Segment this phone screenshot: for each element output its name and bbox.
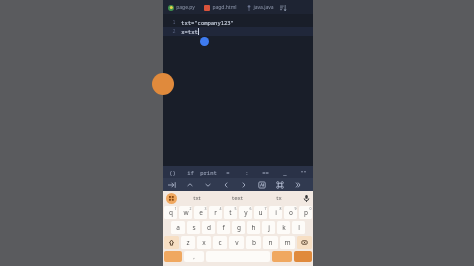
button[interactable]: if [181, 166, 199, 178]
staticText: e [199, 208, 203, 217]
staticText: 8 [279, 206, 282, 211]
button[interactable]: b [246, 236, 261, 249]
button[interactable]: y [239, 206, 252, 219]
staticText: 5 [234, 206, 237, 211]
button[interactable]: p [299, 206, 312, 219]
button[interactable]: page.py [166, 4, 197, 11]
button[interactable]: l [292, 221, 305, 234]
staticText: _ [283, 169, 287, 176]
staticText: tx [276, 194, 282, 202]
button[interactable]: s [187, 221, 200, 234]
button[interactable]: Shift [164, 236, 179, 249]
button[interactable]: txt [177, 191, 217, 205]
staticText: i [275, 208, 277, 217]
button[interactable]: j [262, 221, 275, 234]
staticText: 2 [189, 206, 192, 211]
staticText: if [187, 169, 194, 176]
staticText: 0 [309, 206, 312, 211]
button[interactable]: Tab [163, 178, 181, 191]
button[interactable]: Up [181, 178, 199, 191]
staticText: () [169, 169, 176, 176]
button[interactable]: AI assist [253, 178, 271, 191]
button[interactable]: Run [152, 73, 174, 95]
button[interactable]: java.java [244, 4, 276, 11]
button[interactable]: Command [271, 178, 289, 191]
button[interactable]: Keyboard settings [166, 193, 177, 204]
button[interactable]: Sort tabs [278, 3, 287, 12]
button[interactable]: Down [199, 178, 217, 191]
button[interactable]: _ [275, 166, 294, 178]
staticText: txt [193, 194, 201, 202]
staticText: z [186, 238, 190, 247]
button[interactable]: : [237, 166, 256, 178]
staticText: , [193, 253, 195, 261]
button[interactable]: Enter [294, 251, 312, 262]
staticText: d [207, 223, 211, 232]
button[interactable]: v [229, 236, 244, 249]
staticText: x=txt [181, 28, 198, 35]
staticText: a [176, 223, 180, 232]
staticText: print [200, 169, 217, 176]
staticText: n [268, 238, 273, 247]
button[interactable]: e [194, 206, 207, 219]
staticText: b [252, 238, 256, 247]
button[interactable]: () [163, 166, 181, 178]
staticText: t [229, 208, 232, 217]
staticText: v [235, 238, 239, 247]
button[interactable]: == [256, 166, 275, 178]
staticText: == [262, 169, 269, 176]
staticText: "" [300, 169, 307, 176]
button[interactable]: t [224, 206, 237, 219]
staticText: 1 [172, 19, 176, 26]
button[interactable]: text [217, 191, 258, 205]
staticText: 4 [219, 206, 222, 211]
staticText: o [289, 208, 293, 217]
staticText: 3 [204, 206, 207, 211]
button[interactable]: o [284, 206, 297, 219]
staticText: java.java [253, 4, 274, 11]
button[interactable]: q [164, 206, 177, 219]
staticText: y [244, 208, 248, 217]
button[interactable]: Right [235, 178, 253, 191]
button[interactable]: Left [217, 178, 235, 191]
button[interactable]: n [263, 236, 278, 249]
staticText: pagd.html [212, 4, 237, 11]
button[interactable]: z [181, 236, 195, 249]
staticText: u [258, 208, 263, 217]
staticText: w [183, 208, 189, 217]
button[interactable] [272, 251, 292, 262]
button[interactable]: Voice input [299, 191, 313, 205]
staticText: 9 [294, 206, 297, 211]
staticText: : [245, 169, 249, 176]
staticText: m [284, 238, 291, 247]
staticText: 2 [172, 28, 176, 35]
button[interactable]: c [213, 236, 227, 249]
staticText: g [237, 223, 241, 232]
button[interactable]: "" [294, 166, 313, 178]
button[interactable]: Symbols [164, 251, 182, 262]
button[interactable]: a [171, 221, 185, 234]
button[interactable]: tx [258, 191, 299, 205]
button[interactable]: x [197, 236, 211, 249]
button[interactable]: u [254, 206, 267, 219]
button[interactable]: d [202, 221, 215, 234]
button[interactable]: r [209, 206, 222, 219]
staticText: 1 [174, 206, 177, 211]
button[interactable]: m [280, 236, 295, 249]
staticText: s [192, 223, 196, 232]
button[interactable]: = [218, 166, 237, 178]
staticText: q [169, 208, 173, 217]
button[interactable]: w [179, 206, 192, 219]
button[interactable]: pagd.html [202, 4, 239, 11]
button[interactable]: k [277, 221, 290, 234]
button[interactable]: i [269, 206, 282, 219]
button[interactable]: f [217, 221, 230, 234]
button[interactable]: print [199, 166, 218, 178]
staticText: = [226, 169, 230, 176]
button[interactable]: , [184, 251, 204, 262]
button[interactable]: More [289, 178, 307, 191]
button[interactable]: h [247, 221, 260, 234]
button[interactable]: g [232, 221, 245, 234]
button[interactable]: Backspace [297, 236, 312, 249]
